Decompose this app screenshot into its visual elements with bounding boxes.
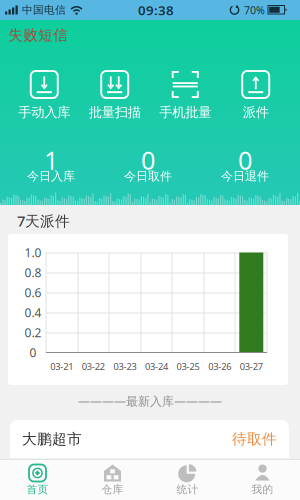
staticText: 大鹏超市 [22,430,82,448]
button[interactable]: 我的 [225,463,300,496]
staticText: 03-22 [82,360,105,373]
staticText: 今日退件 [221,169,269,184]
staticText: 03-23 [113,360,136,373]
staticText: 03-24 [145,360,168,373]
button[interactable]: 首页 [0,463,75,496]
staticText: 0 [141,143,155,177]
staticText: 09:38 [138,1,174,19]
button[interactable]: 批量扫描 [79,71,150,120]
staticText: 批量扫描 [89,104,141,120]
staticText: 派件 [243,104,269,120]
button[interactable]: 大鹏超市 [10,420,289,458]
staticText: 今日取件 [124,169,172,184]
staticText: 失败短信 [8,26,68,44]
staticText: 03-27 [240,360,263,373]
staticText: 03-21 [50,360,73,373]
staticText: 手动入库 [18,104,70,120]
button[interactable]: 手机批量 [150,71,220,120]
button[interactable]: 仓库 [75,463,150,496]
staticText: 0.2 [24,324,41,340]
button[interactable]: 失败短信 [8,26,68,44]
staticText: 0.8 [24,264,41,280]
staticText: 70% [244,3,265,17]
staticText: 中国电信 [22,3,66,16]
staticText: 首页 [26,483,48,496]
staticText: 我的 [251,483,273,496]
staticText: 0 [238,143,252,177]
button[interactable]: 手动入库 [9,71,79,120]
staticText: 今日入库 [27,169,75,184]
staticText: 1.0 [24,244,41,260]
staticText: 统计 [176,483,198,496]
button[interactable]: 统计 [150,463,225,496]
staticText: 03-26 [208,360,231,373]
staticText: ————最新入库———— [78,393,222,409]
staticText: 0.4 [24,304,41,320]
button[interactable]: 派件 [220,71,291,120]
staticText: 仓库 [101,483,123,496]
staticText: 03-25 [177,360,200,373]
staticText: 0 [29,344,36,360]
staticText: 0.6 [24,284,41,300]
staticText: 待取件 [232,430,277,448]
staticText: 7天派件 [17,211,70,230]
staticText: 手机批量 [159,104,211,120]
staticText: 1 [44,143,58,177]
